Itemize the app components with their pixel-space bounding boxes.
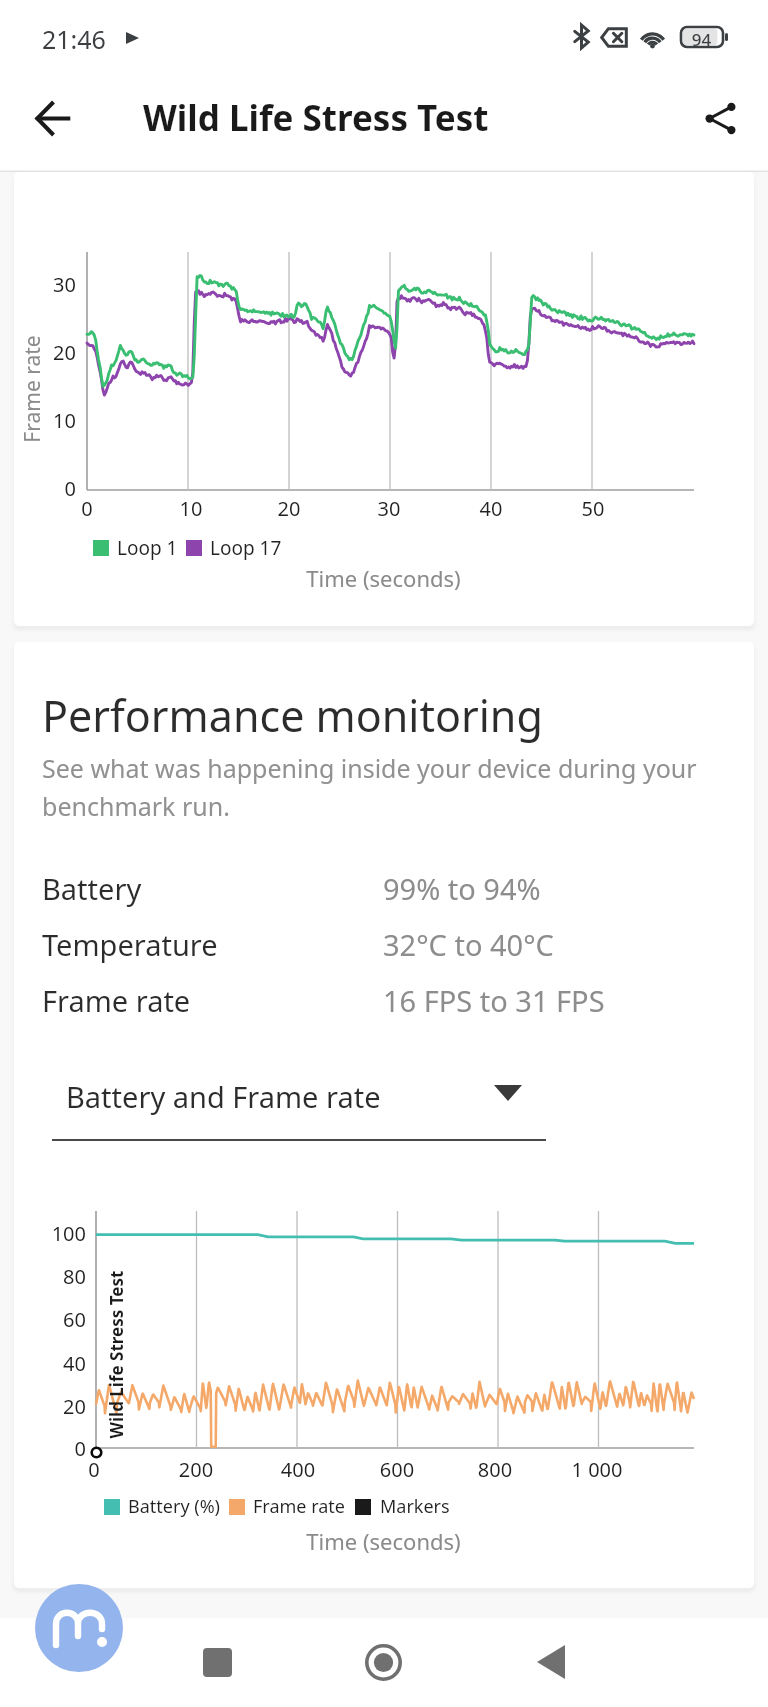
staticText: 0 bbox=[14, 475, 76, 502]
staticText: Frame rate bbox=[42, 981, 383, 1020]
staticText: 20 bbox=[14, 339, 76, 366]
staticText: 200 bbox=[156, 1456, 236, 1483]
staticText: Markers bbox=[380, 1494, 450, 1519]
button[interactable]: Share bbox=[690, 88, 750, 148]
staticText: 30 bbox=[369, 495, 409, 522]
staticText: 40 bbox=[471, 495, 511, 522]
staticText: 16 FPS to 31 FPS bbox=[383, 981, 605, 1020]
staticText: 600 bbox=[357, 1456, 437, 1483]
staticText: 32°C to 40°C bbox=[383, 925, 554, 964]
staticText: 0 bbox=[14, 1435, 86, 1462]
staticText: 0 bbox=[54, 1456, 134, 1483]
staticText: 30 bbox=[14, 271, 76, 298]
staticText: 20 bbox=[269, 495, 309, 522]
staticText: Time (seconds) bbox=[306, 1526, 461, 1556]
staticText: 80 bbox=[14, 1263, 86, 1290]
staticText: 1 000 bbox=[557, 1456, 637, 1483]
staticText: Frame rate bbox=[18, 318, 46, 460]
staticText: Time (seconds) bbox=[306, 563, 461, 593]
staticText: Battery (%) bbox=[128, 1494, 220, 1519]
staticText: 800 bbox=[455, 1456, 535, 1483]
staticText: 21:46 bbox=[42, 22, 106, 56]
staticText: Performance monitoring bbox=[42, 686, 543, 745]
button[interactable]: Back bbox=[23, 88, 83, 148]
staticText: 99% to 94% bbox=[383, 869, 541, 908]
staticText: 10 bbox=[171, 495, 211, 522]
staticText: 40 bbox=[14, 1350, 86, 1377]
staticText: 0 bbox=[67, 495, 107, 522]
staticText: Battery and Frame rate bbox=[66, 1077, 381, 1116]
staticText: Loop 17 bbox=[210, 535, 282, 561]
staticText: Loop 1 bbox=[117, 535, 178, 561]
staticText: 94 bbox=[680, 28, 723, 51]
button[interactable]: Recents bbox=[182, 1627, 252, 1697]
staticText: Battery bbox=[42, 869, 383, 908]
staticText: 400 bbox=[258, 1456, 338, 1483]
button[interactable]: Battery and Frame rate bbox=[52, 1074, 546, 1141]
staticText: 50 bbox=[573, 495, 613, 522]
button[interactable]: Assistant bbox=[35, 1584, 123, 1672]
staticText: See what was happening inside your devic… bbox=[42, 751, 742, 823]
staticText: 100 bbox=[14, 1220, 86, 1247]
button[interactable]: Home bbox=[348, 1627, 418, 1697]
staticText: 10 bbox=[14, 407, 76, 434]
staticText: Wild Life Stress Test bbox=[104, 1224, 127, 1484]
staticText: 20 bbox=[14, 1393, 86, 1420]
staticText: Temperature bbox=[42, 925, 383, 964]
staticText: Frame rate bbox=[253, 1494, 345, 1519]
staticText: Wild Life Stress Test bbox=[143, 94, 489, 142]
staticText: 60 bbox=[14, 1306, 86, 1333]
button[interactable]: Back bbox=[516, 1627, 586, 1697]
